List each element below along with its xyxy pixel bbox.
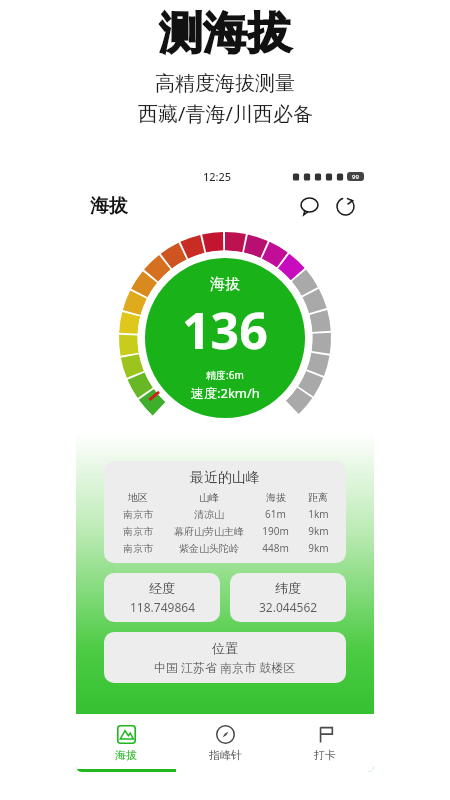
- button[interactable]: Share: [330, 191, 360, 221]
- staticText: 紫金山头陀岭: [179, 542, 239, 555]
- staticText: 测海拔: [159, 6, 291, 61]
- button[interactable]: 位置: [104, 632, 346, 683]
- button[interactable]: 经度: [104, 573, 220, 622]
- staticText: 海拔: [210, 275, 240, 294]
- staticText: 精度:6m: [206, 368, 244, 382]
- staticText: 9km: [308, 524, 329, 538]
- staticText: 南京市: [123, 508, 153, 521]
- staticText: 190m: [262, 524, 289, 538]
- staticText: 最近的山峰: [190, 469, 260, 487]
- staticText: 幕府山劳山主峰: [174, 525, 244, 538]
- button[interactable]: 纬度: [230, 573, 346, 622]
- staticText: 地区: [128, 491, 148, 504]
- staticText: 速度:2km/h: [191, 384, 260, 402]
- staticText: 距离: [308, 491, 328, 504]
- staticText: 海拔: [90, 194, 128, 218]
- staticText: 经度: [149, 580, 175, 596]
- staticText: 32.044562: [259, 599, 318, 615]
- staticText: 南京市: [123, 542, 153, 555]
- staticText: 12:25: [203, 169, 232, 184]
- button[interactable]: 指峰针: [176, 714, 275, 772]
- button[interactable]: 打卡: [275, 714, 374, 772]
- button[interactable]: Feedback: [294, 191, 324, 221]
- button[interactable]: 最近的山峰: [104, 461, 346, 563]
- staticText: 海拔: [115, 748, 137, 762]
- staticText: 山峰: [199, 491, 219, 504]
- staticText: 1km: [308, 507, 329, 521]
- staticText: 位置: [212, 640, 238, 656]
- staticText: 118.749864: [130, 599, 195, 615]
- staticText: 136: [182, 296, 268, 364]
- staticText: 448m: [262, 541, 289, 555]
- button[interactable]: 海拔: [76, 714, 176, 772]
- staticText: 清凉山: [194, 508, 224, 521]
- staticText: 纬度: [275, 580, 301, 596]
- staticText: 高精度海拔测量: [155, 71, 295, 96]
- staticText: 海拔: [266, 491, 286, 504]
- staticText: 61m: [265, 507, 286, 521]
- staticText: 打卡: [314, 748, 336, 762]
- staticText: 99: [352, 173, 359, 181]
- staticText: 南京市: [123, 525, 153, 538]
- staticText: 9km: [308, 541, 329, 555]
- staticText: 西藏/青海/川西必备: [138, 100, 313, 127]
- staticText: 中国 江苏省 南京市 鼓楼区: [154, 659, 296, 675]
- staticText: 指峰针: [209, 748, 242, 762]
